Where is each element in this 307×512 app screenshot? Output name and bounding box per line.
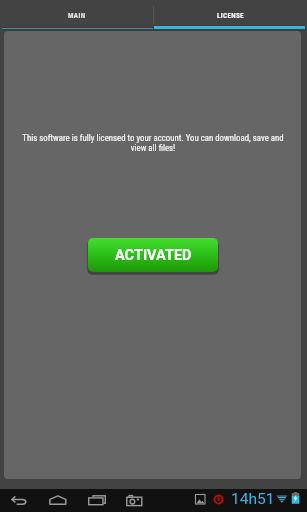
staticText: 14h51 xyxy=(231,490,275,508)
staticText: LICENSE xyxy=(217,11,244,19)
button[interactable]: LICENSE xyxy=(154,0,307,31)
staticText: This software is fully licensed to your … xyxy=(20,133,286,153)
button[interactable]: Home xyxy=(48,490,69,511)
staticText: ACTIVATED xyxy=(115,247,192,264)
button[interactable]: MAIN xyxy=(0,0,153,31)
staticText: MAIN xyxy=(68,11,86,19)
button[interactable]: Back xyxy=(9,490,30,511)
button[interactable]: Recent apps xyxy=(87,490,108,511)
button[interactable]: Screenshot xyxy=(124,490,145,511)
button[interactable]: ACTIVATED xyxy=(88,238,218,272)
